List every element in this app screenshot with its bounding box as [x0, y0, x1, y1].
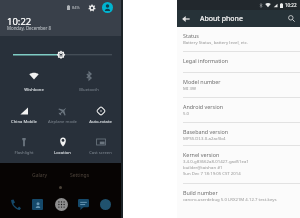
staticText: MPSS.DI.3.0-a2ac5b4	[183, 135, 226, 141]
button[interactable]: China Mobile	[5, 101, 43, 133]
other: Phone	[10, 199, 21, 210]
staticText: Baseband version	[183, 128, 229, 135]
other: Messaging	[78, 199, 89, 210]
staticText: Status	[183, 32, 199, 39]
button[interactable]: Auto-rotate	[81, 101, 119, 133]
button[interactable]: Airplane mode	[43, 101, 81, 133]
button[interactable]: Android version	[177, 98, 300, 122]
button[interactable]: Wishbone	[7, 64, 61, 101]
button[interactable]: Messaging	[75, 196, 92, 213]
staticText: Legal information	[183, 57, 229, 64]
button[interactable]: Contacts	[29, 196, 46, 213]
staticText: Location	[54, 150, 71, 156]
button[interactable]: Model number	[177, 73, 300, 97]
other: Browser	[100, 199, 111, 210]
staticText: 10:22	[285, 2, 297, 8]
button[interactable]: All apps	[52, 195, 70, 213]
button[interactable]: Baseband version	[177, 123, 300, 145]
staticText: China Mobile	[11, 119, 37, 125]
staticText: About phone	[200, 14, 243, 24]
staticText: Android version	[183, 103, 224, 110]
staticText: 5.0	[183, 110, 190, 116]
staticText: Auto-rotate	[89, 119, 112, 125]
staticText: Battery Status, battery level, etc.	[183, 39, 248, 45]
button[interactable]: Location	[43, 133, 81, 163]
button[interactable]: Bluetooth	[61, 64, 116, 101]
button[interactable]: Cast screen	[81, 133, 119, 163]
button[interactable]: Browser	[97, 196, 114, 213]
staticText: Cast screen	[89, 150, 112, 156]
staticText: Flashlight	[14, 150, 34, 156]
button[interactable]: Build number	[177, 184, 300, 208]
staticText: 3.4.0-g83662a8-01427-gad51ea1 builder@ta…	[183, 158, 249, 176]
staticText: Kernel version	[183, 151, 220, 158]
button[interactable]: Settings	[86, 2, 97, 13]
staticText: Bluetooth	[79, 87, 99, 93]
staticText: Galary	[32, 172, 48, 179]
staticText: 84%	[72, 5, 80, 10]
other: Settings	[88, 4, 96, 12]
button[interactable]: Navigate up	[177, 10, 194, 27]
button[interactable]: Search	[283, 10, 300, 27]
staticText: Model number	[183, 78, 221, 85]
staticText: Settings	[70, 172, 90, 179]
staticText: Airplane mode	[48, 119, 77, 125]
button[interactable]: User account	[102, 2, 113, 13]
other: Contacts	[32, 199, 43, 210]
staticText: Monday, December 8	[7, 25, 51, 31]
other: All apps	[55, 198, 68, 211]
staticText: Build number	[183, 189, 218, 196]
staticText: Wishbone	[24, 87, 44, 93]
staticText: 10:22	[7, 15, 32, 28]
button[interactable]: Phone	[7, 196, 24, 213]
button[interactable]: Status	[177, 27, 300, 51]
button[interactable]: Kernel version	[177, 146, 300, 183]
staticText: cancro-userdebug 5.0 LRX21M 4.12.7 test-…	[183, 196, 277, 202]
staticText: MI 3W	[183, 85, 196, 91]
button[interactable]: Legal information	[177, 52, 300, 72]
button[interactable]: Flashlight	[5, 133, 43, 163]
